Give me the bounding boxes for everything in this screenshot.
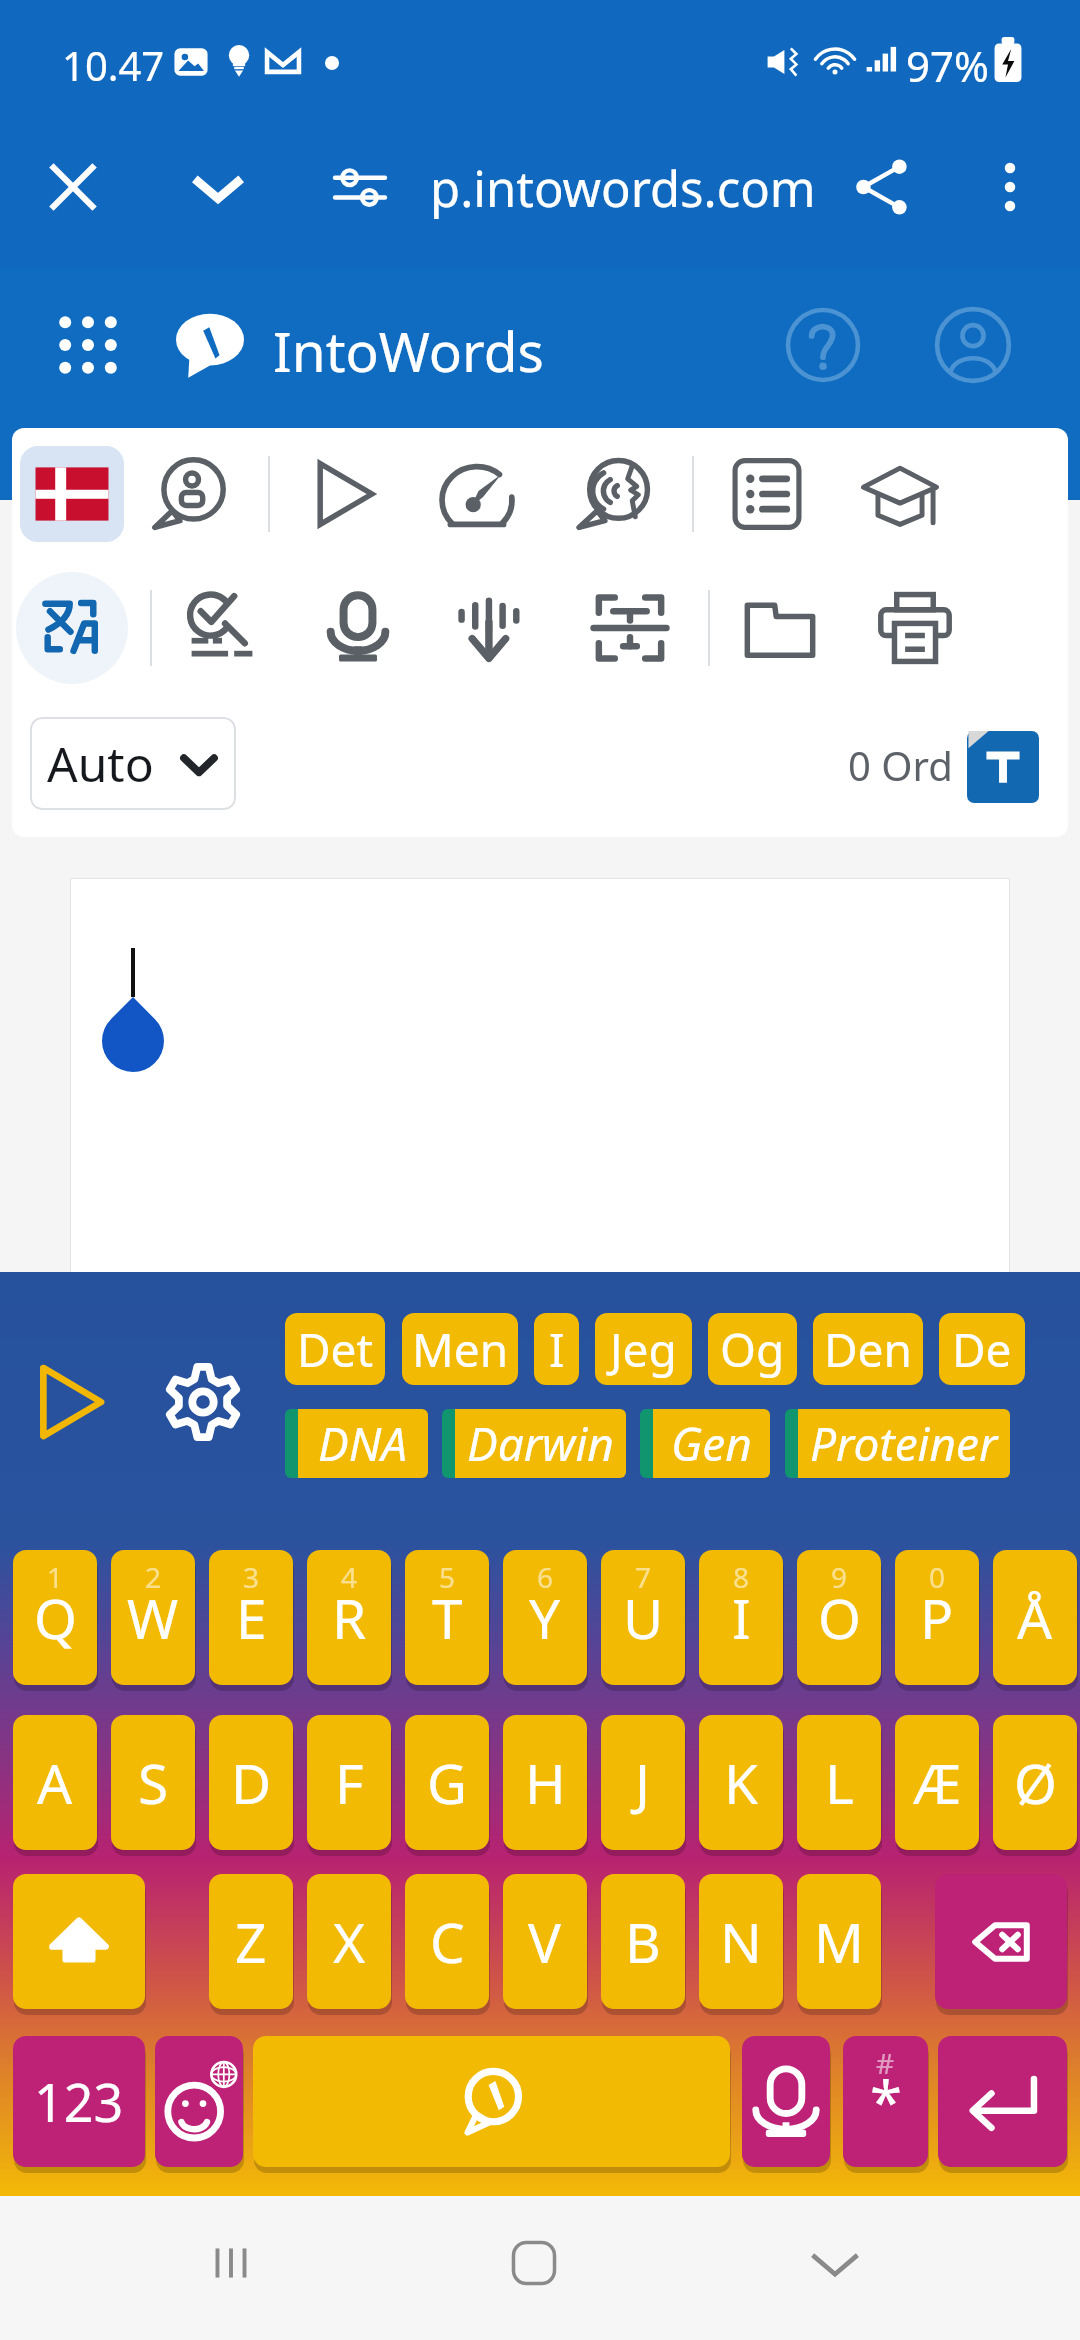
button[interactable]: Det [285, 1313, 385, 1385]
staticText: L [825, 1745, 854, 1820]
button[interactable]: Minimize [163, 132, 273, 242]
staticText: 3 [243, 1558, 260, 1596]
staticText: Y [529, 1580, 561, 1655]
button[interactable]: Den [813, 1313, 923, 1385]
button[interactable]: More options [955, 132, 1065, 242]
button[interactable]: J [601, 1715, 685, 1850]
button[interactable]: A [13, 1715, 97, 1850]
button[interactable]: Pronounce [558, 438, 670, 550]
button[interactable]: Scan text [574, 572, 686, 684]
button[interactable]: Settings [160, 1359, 246, 1445]
button[interactable]: Emoji [155, 2036, 243, 2167]
staticText: Æ [913, 1745, 962, 1820]
button[interactable]: M [797, 1874, 881, 2009]
staticText: Q [34, 1580, 77, 1655]
staticText: p.intowords.com [430, 155, 816, 222]
staticText: J [635, 1745, 651, 1820]
button[interactable]: DNA [285, 1409, 428, 1478]
button[interactable]: Apps [40, 297, 136, 393]
button[interactable]: Text format [967, 731, 1039, 803]
button[interactable]: N [699, 1874, 783, 2009]
button[interactable]: P [895, 1550, 979, 1685]
button[interactable]: Dictate [302, 572, 414, 684]
button[interactable]: Jeg [595, 1313, 692, 1385]
button[interactable]: De [939, 1313, 1025, 1385]
button[interactable]: T [405, 1550, 489, 1685]
button[interactable]: D [209, 1715, 293, 1850]
button[interactable]: Translate [16, 572, 128, 684]
button[interactable]: R [307, 1550, 391, 1685]
button[interactable]: I [699, 1550, 783, 1685]
staticText: B [625, 1904, 661, 1979]
button[interactable]: Space [253, 2036, 730, 2167]
button[interactable]: Read aloud [27, 1359, 113, 1445]
button[interactable]: W [111, 1550, 195, 1685]
button[interactable]: X [307, 1874, 391, 2009]
button[interactable]: Auto [30, 717, 236, 810]
staticText: 8 [733, 1558, 750, 1596]
button[interactable]: Site information [312, 138, 408, 234]
staticText: Den [824, 1318, 912, 1381]
button[interactable]: U [601, 1550, 685, 1685]
staticText: K [724, 1745, 759, 1820]
button[interactable]: Share [827, 132, 937, 242]
button[interactable]: G [405, 1715, 489, 1850]
staticText: IntoWords [273, 313, 544, 388]
button[interactable]: Shift [13, 1874, 145, 2009]
button[interactable]: O [797, 1550, 881, 1685]
staticText: A [37, 1745, 73, 1820]
staticText: X [333, 1904, 366, 1979]
button[interactable]: 123 [13, 2036, 145, 2167]
button[interactable]: Backspace [935, 1874, 1067, 2009]
button[interactable]: Danish [16, 438, 128, 550]
staticText: * [870, 2062, 902, 2141]
button[interactable]: L [797, 1715, 881, 1850]
button[interactable]: Profile [133, 438, 245, 550]
button[interactable]: Learn [844, 438, 956, 550]
button[interactable]: Insert [439, 572, 551, 684]
staticText: R [332, 1580, 367, 1655]
button[interactable]: Å [993, 1550, 1077, 1685]
staticText: N [720, 1904, 762, 1979]
button[interactable]: Z [209, 1874, 293, 2009]
button[interactable]: Close [18, 132, 128, 242]
button[interactable]: * [843, 2036, 928, 2167]
button[interactable]: B [601, 1874, 685, 2009]
button[interactable]: Gen [640, 1409, 770, 1478]
button[interactable]: S [111, 1715, 195, 1850]
button[interactable]: Play [287, 438, 399, 550]
button[interactable]: I [534, 1313, 579, 1385]
button[interactable]: Recent apps [181, 2213, 281, 2313]
button[interactable]: Darwin [442, 1409, 626, 1478]
button[interactable]: Og [708, 1313, 797, 1385]
button[interactable]: E [209, 1550, 293, 1685]
staticText: 9 [831, 1558, 848, 1596]
button[interactable]: Men [402, 1313, 518, 1385]
staticText: Proteiner [810, 1412, 998, 1475]
button[interactable]: Hide keyboard [785, 2213, 885, 2313]
staticText: 4 [341, 1558, 358, 1596]
button[interactable]: Ø [993, 1715, 1077, 1850]
button[interactable]: Proteiner [785, 1409, 1010, 1478]
staticText: 10.47 [62, 38, 165, 92]
button[interactable]: Y [503, 1550, 587, 1685]
button[interactable]: Speed [421, 438, 533, 550]
button[interactable]: Home [484, 2213, 584, 2313]
button[interactable]: V [503, 1874, 587, 2009]
button[interactable]: F [307, 1715, 391, 1850]
button[interactable]: K [699, 1715, 783, 1850]
button[interactable]: Q [13, 1550, 97, 1685]
button[interactable]: Help [773, 295, 873, 395]
button[interactable]: H [503, 1715, 587, 1850]
button[interactable]: Print [859, 572, 971, 684]
button[interactable]: Spell check [166, 572, 278, 684]
button[interactable]: Voice input [742, 2036, 830, 2167]
button[interactable]: Enter [938, 2036, 1067, 2167]
button[interactable]: Æ [895, 1715, 979, 1850]
button[interactable]: C [405, 1874, 489, 2009]
button[interactable]: Account [923, 295, 1023, 395]
button[interactable]: Files [724, 572, 836, 684]
staticText: W [127, 1580, 179, 1655]
button[interactable]: List [711, 438, 823, 550]
staticText: Å [1017, 1580, 1053, 1655]
